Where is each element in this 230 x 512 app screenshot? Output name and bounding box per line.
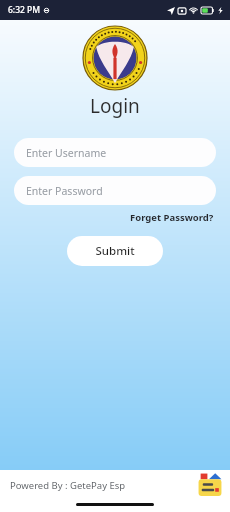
staticText: 6:32 PM	[8, 4, 41, 16]
staticText: Enter Username	[26, 146, 107, 160]
staticText: Forget Password?	[130, 211, 214, 224]
button[interactable]: GetePay	[197, 472, 223, 498]
button[interactable]: Forget Password?	[128, 209, 216, 226]
staticText: Enter Password	[26, 184, 103, 198]
staticText: Powered By : GetePay Esp	[10, 479, 126, 492]
staticText: Submit	[95, 243, 135, 259]
button[interactable]: Submit	[67, 236, 163, 266]
button[interactable]: Enter Password	[14, 176, 216, 205]
staticText: Login	[90, 93, 140, 119]
button[interactable]: Enter Username	[14, 138, 216, 167]
